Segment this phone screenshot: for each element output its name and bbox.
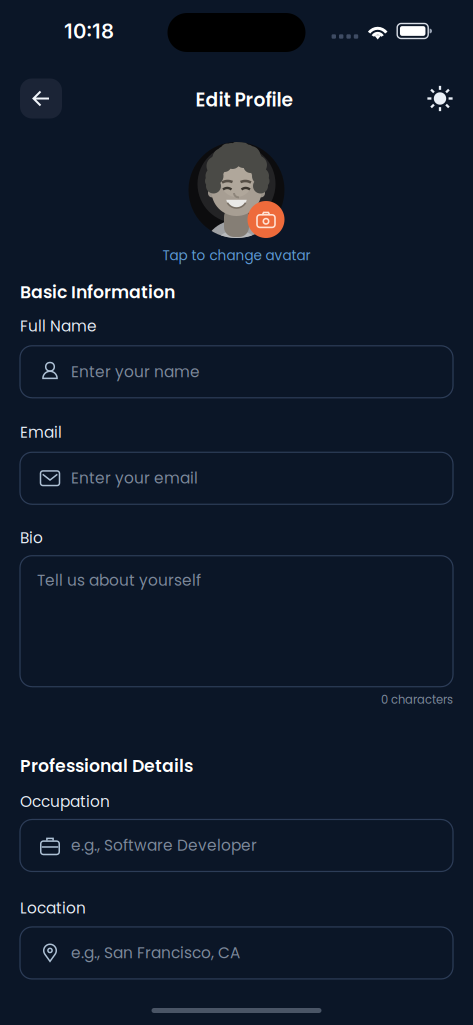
button[interactable]: e.g., San Francisco, CA: [20, 927, 453, 979]
staticText: Tell us about yourself: [37, 570, 201, 591]
button[interactable]: e.g., Software Developer: [20, 819, 453, 871]
staticText: Enter your email: [71, 467, 198, 489]
staticText: 0 characters: [381, 692, 453, 708]
staticText: Full Name: [20, 315, 97, 337]
staticText: Enter your name: [71, 361, 200, 382]
staticText: Professional Details: [20, 754, 193, 778]
staticText: Edit Profile: [195, 87, 293, 113]
staticText: Email: [20, 422, 62, 443]
button[interactable]: Enter your name: [20, 346, 453, 398]
staticText: Location: [20, 897, 86, 919]
staticText: e.g., Software Developer: [71, 835, 257, 856]
staticText: Occupation: [20, 791, 110, 812]
staticText: 10:18: [64, 19, 114, 43]
button[interactable]: Back: [20, 78, 62, 118]
staticText: Basic Information: [20, 280, 175, 304]
button[interactable]: Tell us about yourself: [20, 556, 453, 687]
staticText: Tap to change avatar: [162, 246, 310, 265]
button[interactable]: Tap to change avatar: [162, 238, 310, 265]
button[interactable]: Toggle appearance: [423, 81, 457, 115]
button[interactable]: Enter your email: [20, 452, 453, 504]
staticText: Bio: [20, 527, 43, 549]
staticText: e.g., San Francisco, CA: [71, 942, 240, 964]
button[interactable]: Change avatar: [188, 142, 284, 238]
